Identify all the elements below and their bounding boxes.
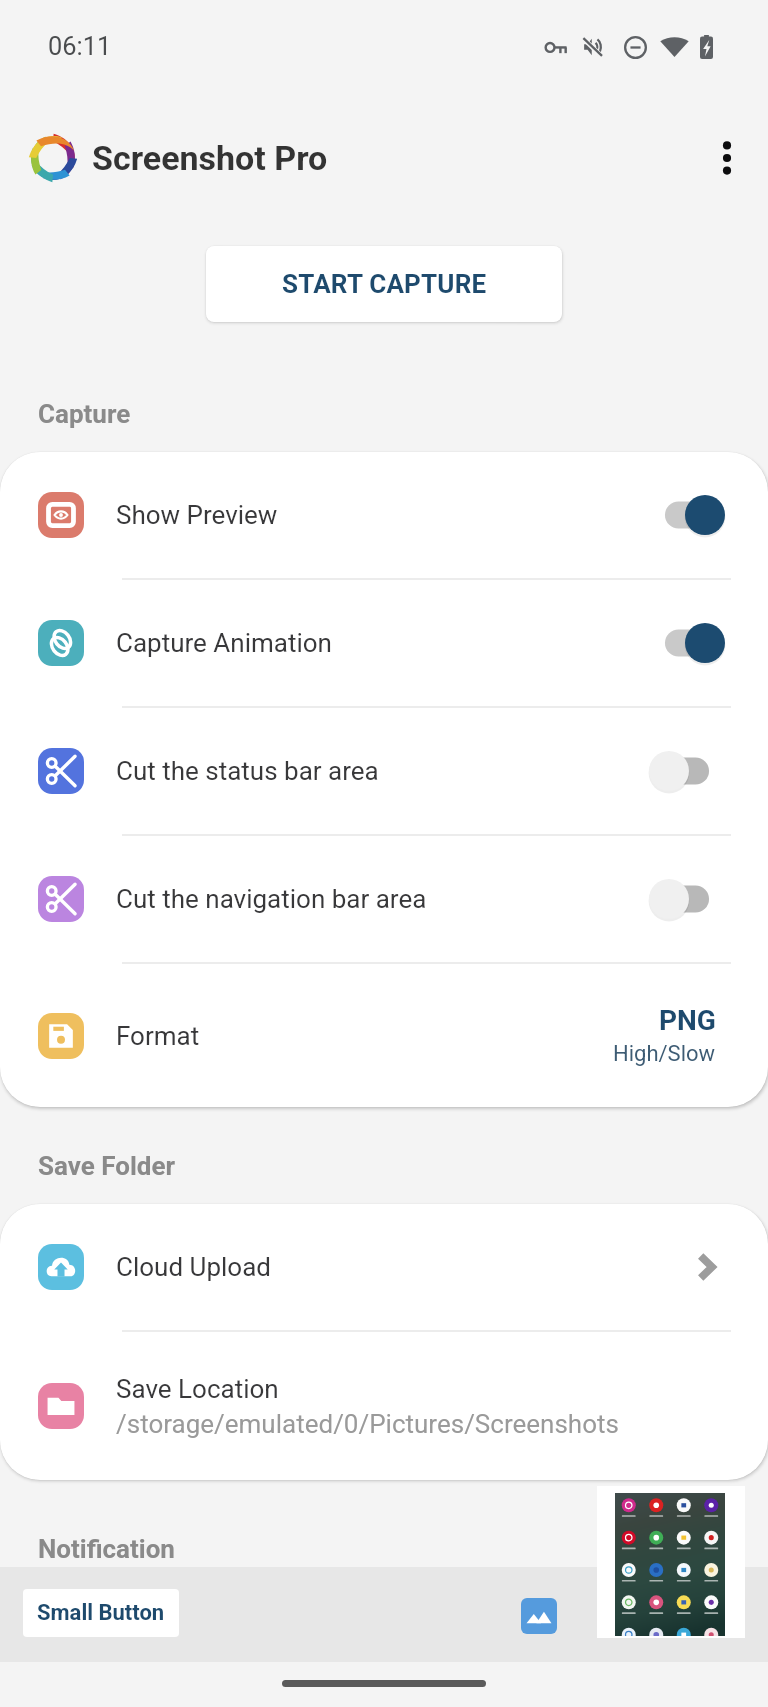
staticText: Small Button [37, 1600, 165, 1626]
staticText: Save Location [116, 1374, 279, 1404]
button[interactable]: Show Preview [0, 452, 768, 578]
button[interactable]: Cut the navigation bar area [0, 836, 768, 962]
staticText: 06:11 [48, 31, 112, 61]
button[interactable]: Save Location [0, 1332, 768, 1480]
staticText: Capture [38, 399, 131, 429]
button[interactable]: More options [683, 114, 768, 202]
button[interactable]: Gallery [521, 1598, 557, 1634]
button[interactable] [649, 623, 725, 663]
staticText: Notification [38, 1534, 175, 1564]
button[interactable]: Cloud Upload [0, 1204, 768, 1330]
staticText: Format [116, 1021, 200, 1051]
staticText: Show Preview [116, 500, 278, 530]
staticText: Save Folder [38, 1151, 175, 1181]
staticText: Screenshot Pro [92, 138, 328, 178]
staticText: PNG [659, 1004, 716, 1037]
button[interactable] [649, 751, 725, 791]
staticText: Cut the navigation bar area [116, 884, 427, 914]
staticText: Cut the status bar area [116, 756, 379, 786]
button[interactable] [649, 495, 725, 535]
staticText: /storage/emulated/0/Pictures/Screenshots [116, 1409, 619, 1439]
staticText: Cloud Upload [116, 1252, 271, 1282]
button[interactable]: Cut the status bar area [0, 708, 768, 834]
staticText: START CAPTURE [282, 269, 487, 299]
button[interactable]: Format [0, 964, 768, 1107]
staticText: High/Slow [613, 1041, 716, 1067]
staticText: Capture Animation [116, 628, 332, 658]
button[interactable]: Capture Animation [0, 580, 768, 706]
button[interactable] [649, 879, 725, 919]
button[interactable]: Small Button [23, 1589, 179, 1637]
button[interactable]: START CAPTURE [206, 246, 562, 322]
